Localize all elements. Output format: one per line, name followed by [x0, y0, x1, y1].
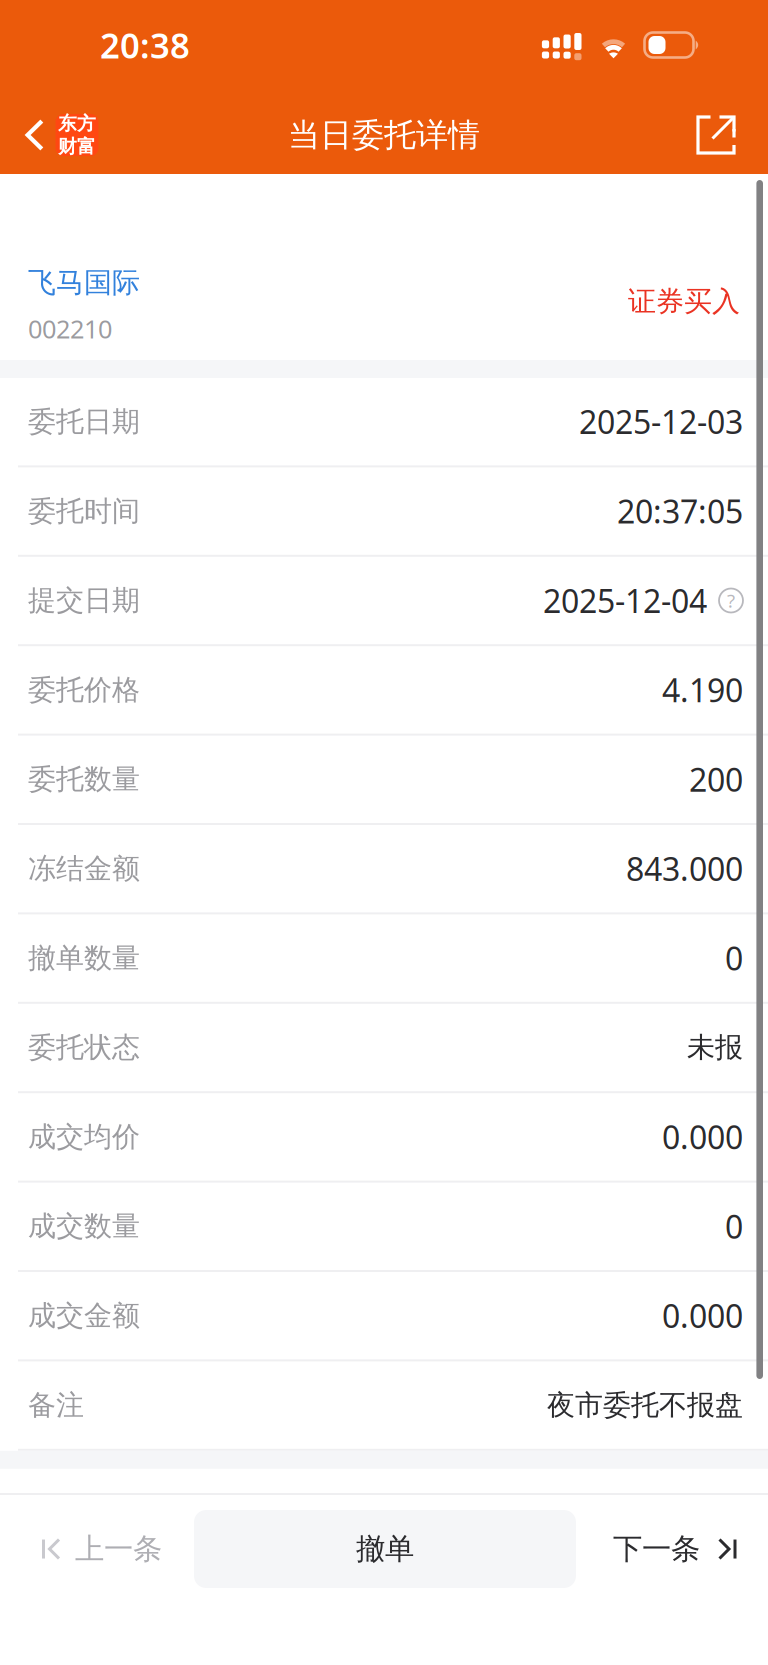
staticText: 上一条	[75, 1531, 162, 1567]
staticText: 未报	[687, 1030, 743, 1065]
button[interactable]: 分享	[670, 96, 768, 174]
button[interactable]: 上一条	[0, 1495, 194, 1603]
staticText: 委托日期	[28, 404, 140, 439]
staticText: 20:38	[100, 22, 190, 68]
staticText: 飞马国际	[28, 265, 140, 300]
staticText: 东方	[58, 112, 96, 135]
staticText: 委托状态	[28, 1030, 140, 1065]
staticText: 备注	[28, 1388, 84, 1422]
staticText: 成交均价	[28, 1120, 140, 1154]
staticText: 委托数量	[28, 762, 140, 796]
staticText: 0	[725, 937, 743, 979]
staticText: 002210	[28, 312, 112, 345]
button[interactable]: 返回 东方财富	[0, 96, 114, 174]
staticText: 夜市委托不报盘	[547, 1388, 743, 1422]
button[interactable]: 下一条	[576, 1495, 768, 1603]
staticText: 20:37:05	[617, 490, 743, 532]
staticText: 撤单数量	[28, 941, 140, 975]
staticText: 成交金额	[28, 1298, 140, 1333]
staticText: 提交日期	[28, 583, 140, 618]
staticText: 证券买入	[628, 284, 740, 319]
staticText: 4.190	[662, 669, 743, 711]
staticText: 0.000	[662, 1116, 743, 1158]
staticText: 2025-12-03	[579, 400, 743, 443]
staticText: 当日委托详情	[288, 115, 480, 155]
staticText: 2025-12-04	[543, 579, 707, 622]
staticText: ?	[727, 588, 735, 613]
staticText: 冻结金额	[28, 851, 140, 886]
staticText: 下一条	[613, 1531, 700, 1567]
staticText: 0.000	[662, 1294, 743, 1337]
staticText: 成交数量	[28, 1209, 140, 1243]
button[interactable]: 撤单	[194, 1510, 576, 1588]
staticText: 财富	[58, 135, 96, 158]
staticText: 委托价格	[28, 673, 140, 707]
staticText: 200	[689, 758, 743, 801]
staticText: 委托时间	[28, 494, 140, 528]
staticText: 0	[725, 1205, 743, 1248]
staticText: 撤单	[356, 1531, 414, 1567]
staticText: 843.000	[626, 847, 743, 890]
